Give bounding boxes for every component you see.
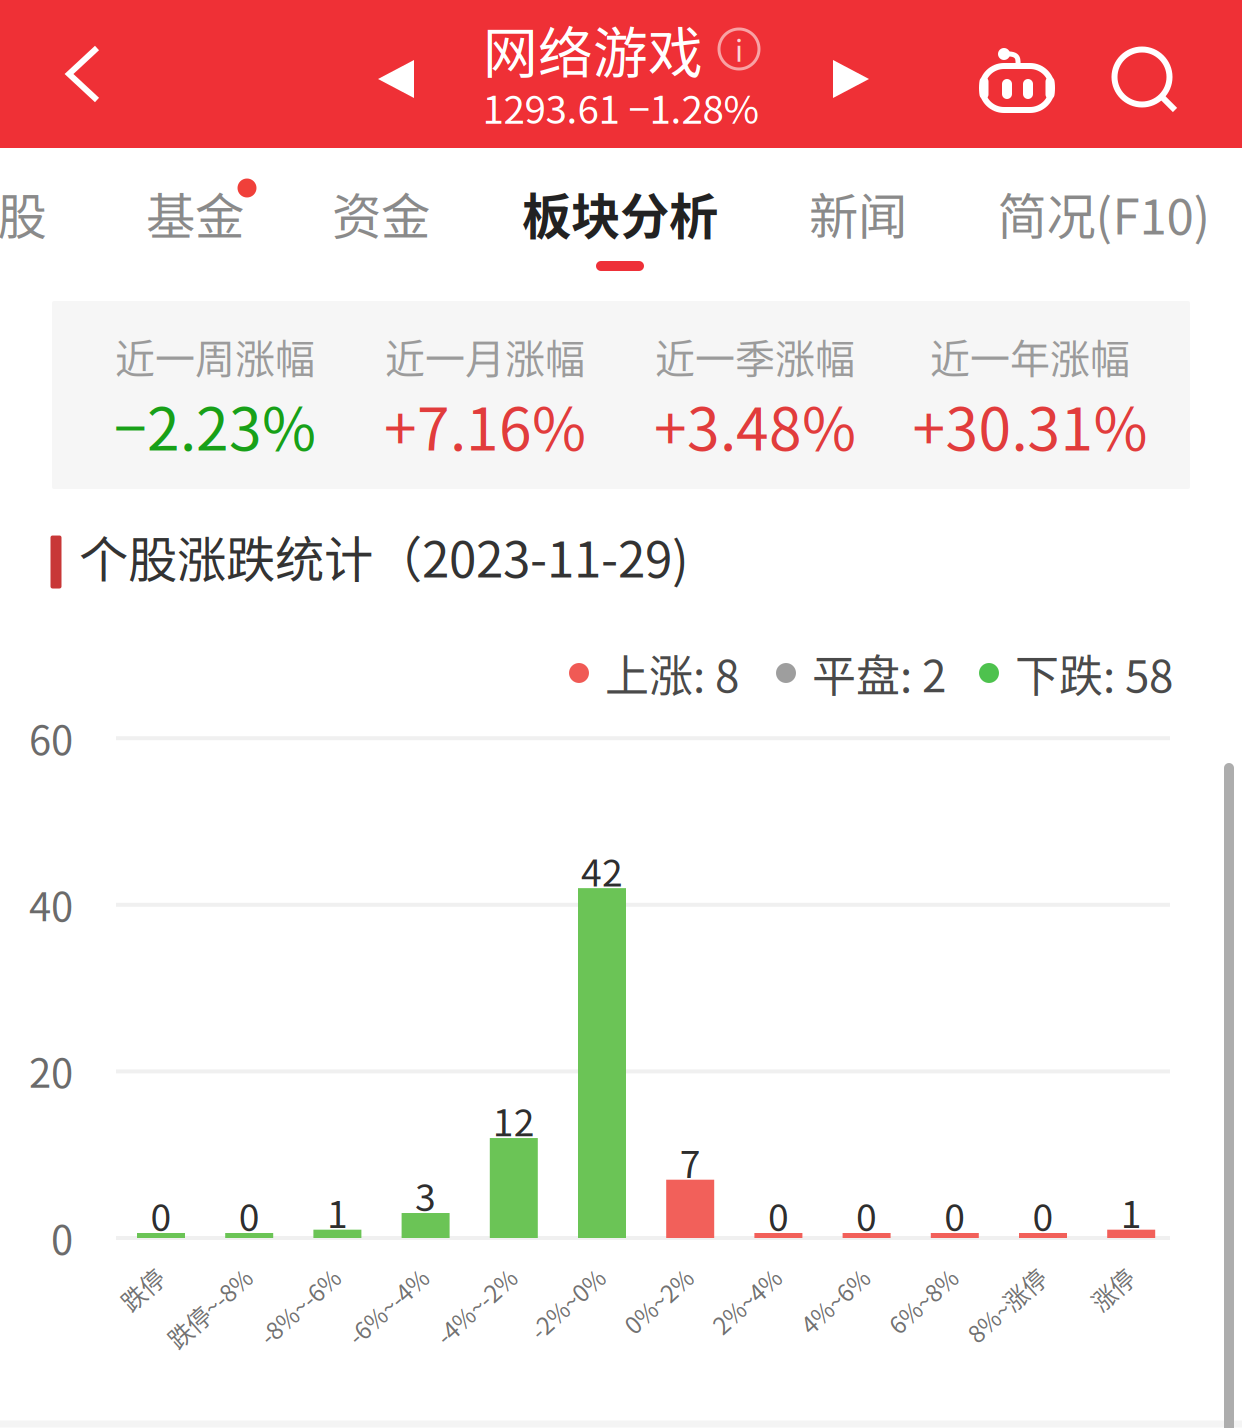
- staticText: 2%~4%: [694, 1256, 777, 1290]
- staticText: 跌停~-8%: [144, 1256, 248, 1290]
- staticText: 股: [0, 177, 46, 249]
- staticText: i: [735, 28, 743, 70]
- staticText: 0: [768, 1188, 789, 1242]
- staticText: −2.23%: [114, 382, 316, 467]
- staticText: 40: [29, 875, 73, 933]
- staticText: 0: [856, 1188, 877, 1242]
- staticText: 资金: [332, 177, 430, 249]
- button[interactable]: 板块分析: [500, 148, 740, 292]
- button[interactable]: Search: [1086, 21, 1206, 141]
- staticText: 6%~8%: [871, 1256, 954, 1290]
- staticText: -2%~0%: [510, 1256, 601, 1290]
- staticText: 新闻: [809, 177, 907, 249]
- button[interactable]: 股: [0, 148, 77, 292]
- staticText: 基金: [146, 177, 244, 249]
- staticText: 12: [493, 1093, 535, 1147]
- staticText: +3.48%: [654, 382, 856, 467]
- staticText: 1: [327, 1185, 348, 1239]
- staticText: -6%~-4%: [326, 1256, 425, 1290]
- staticText: 8%~涨停: [946, 1256, 1042, 1290]
- staticText: 0: [944, 1188, 965, 1242]
- staticText: +30.31%: [912, 382, 1147, 467]
- staticText: 上涨: 8: [605, 641, 739, 705]
- staticText: 1: [1121, 1185, 1142, 1239]
- staticText: 60: [29, 708, 73, 766]
- staticText: 7: [680, 1135, 701, 1189]
- staticText: 个股涨跌统计（2023-11-29): [79, 520, 689, 592]
- staticText: 3: [415, 1168, 436, 1222]
- staticText: 板块分析: [522, 177, 718, 249]
- staticText: 1293.61 −1.28%: [482, 79, 759, 135]
- staticText: 近一年涨幅: [930, 327, 1130, 385]
- staticText: -4%~-2%: [414, 1256, 513, 1290]
- button[interactable]: Assistant: [957, 22, 1077, 142]
- staticText: 0: [239, 1188, 260, 1242]
- staticText: 0%~2%: [606, 1256, 689, 1290]
- staticText: 0: [150, 1188, 171, 1242]
- button[interactable]: 简况(F10): [974, 148, 1234, 292]
- staticText: 简况(F10): [997, 177, 1210, 249]
- staticText: +7.16%: [384, 382, 586, 467]
- staticText: 近一月涨幅: [385, 327, 585, 385]
- staticText: 4%~6%: [783, 1256, 866, 1290]
- button[interactable]: Previous sector: [341, 24, 451, 134]
- staticText: 下跌: 58: [1015, 641, 1173, 705]
- button[interactable]: 资金: [306, 148, 456, 292]
- staticText: 近一季涨幅: [655, 327, 855, 385]
- button[interactable]: 新闻: [783, 148, 933, 292]
- staticText: 42: [581, 843, 623, 897]
- staticText: 0: [1032, 1188, 1053, 1242]
- button[interactable]: 基金: [120, 148, 270, 292]
- staticText: -8%~-6%: [237, 1256, 336, 1290]
- staticText: 近一周涨幅: [115, 327, 315, 385]
- button[interactable]: Next sector: [796, 24, 906, 134]
- staticText: 网络游戏: [483, 9, 703, 89]
- staticText: 0: [51, 1208, 73, 1266]
- staticText: 平盘: 2: [812, 641, 946, 705]
- staticText: 20: [29, 1041, 73, 1099]
- button[interactable]: Back: [18, 0, 148, 148]
- staticText: 跌停: [112, 1256, 160, 1290]
- staticText: 涨停: [1082, 1256, 1130, 1290]
